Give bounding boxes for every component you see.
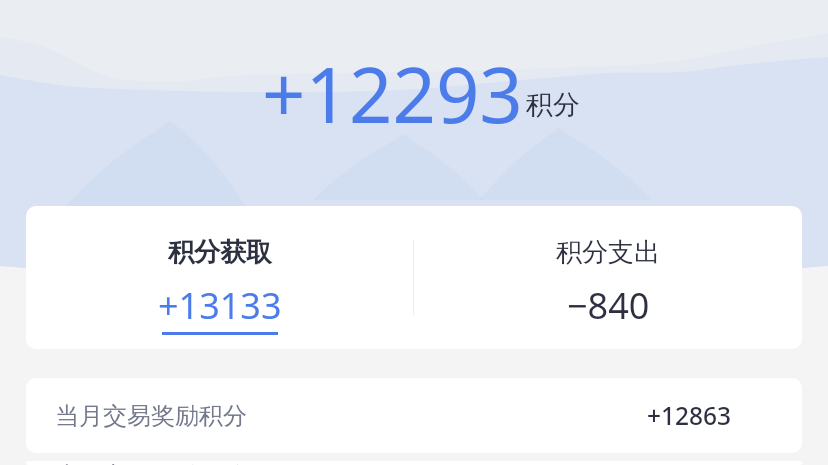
- button[interactable]: 积分获取: [26, 206, 413, 349]
- staticText: 上月交易奖励积分: [55, 461, 247, 465]
- staticText: +12863: [647, 399, 732, 432]
- button[interactable]: 上月交易奖励积分: [26, 461, 802, 465]
- staticText: 积分支出: [556, 236, 660, 269]
- staticText: +12293: [262, 42, 523, 146]
- staticText: 当月交易奖励积分: [55, 401, 247, 431]
- staticText: 积分获取: [168, 236, 272, 269]
- button[interactable]: 积分支出: [414, 206, 802, 349]
- staticText: 积分: [526, 88, 580, 122]
- staticText: +13133: [158, 281, 282, 330]
- staticText: −840: [567, 281, 650, 330]
- button[interactable]: 当月交易奖励积分: [26, 378, 802, 453]
